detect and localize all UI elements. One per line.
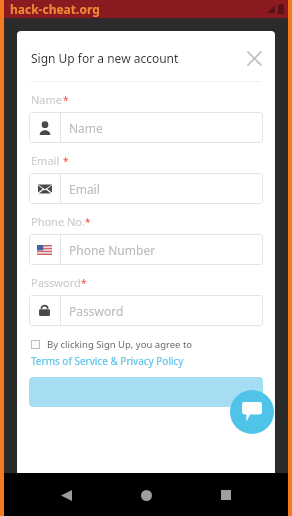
staticText: Name [31, 92, 63, 107]
staticText: Password [31, 275, 81, 290]
staticText: * [63, 93, 69, 107]
button[interactable] [29, 377, 263, 407]
button[interactable]: Close [241, 45, 267, 71]
staticText: * [85, 215, 91, 229]
button[interactable]: Chat [230, 390, 274, 434]
button[interactable]: Back [48, 477, 84, 513]
button[interactable]: Phone Number [29, 234, 263, 265]
staticText: * [81, 276, 87, 290]
staticText: Password [69, 303, 124, 319]
staticText: Phone Number [69, 242, 156, 258]
button[interactable]: By clicking Sign Up, you agree to [31, 338, 265, 351]
staticText: Phone No. [31, 214, 85, 229]
button[interactable]: Email [29, 173, 263, 204]
staticText: By clicking Sign Up, you agree to [47, 338, 193, 351]
staticText: Name [69, 120, 103, 136]
staticText: Sign Up for a new account [31, 50, 241, 66]
button[interactable]: Home [128, 477, 164, 513]
staticText: Terms of Service & Privacy Policy [31, 354, 184, 368]
staticText: * [63, 154, 69, 168]
staticText: Email [69, 181, 100, 197]
button[interactable]: Recents [208, 477, 244, 513]
button[interactable]: Name [29, 112, 263, 143]
staticText: hack-cheat.org [10, 1, 100, 17]
button[interactable]: Terms of Service & Privacy Policy [31, 354, 184, 368]
staticText: Email [31, 153, 63, 168]
button[interactable]: Password [29, 295, 263, 326]
